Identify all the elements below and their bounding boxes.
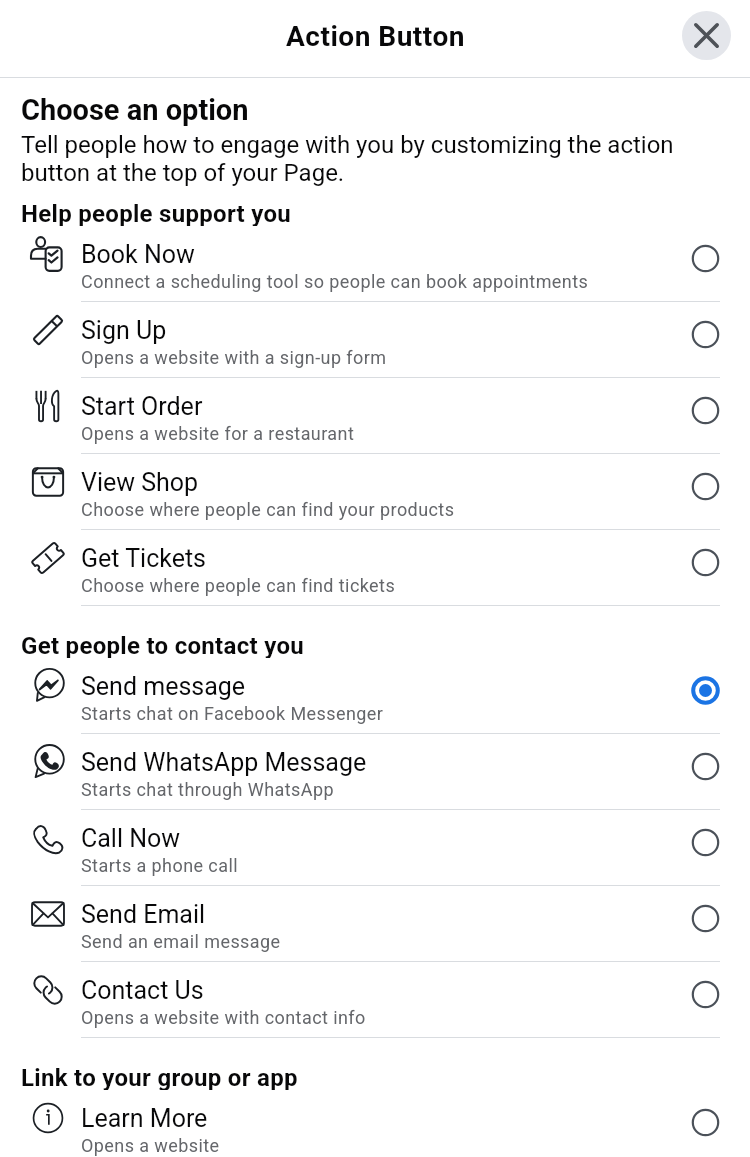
staticText: Tell people how to engage with you by cu… xyxy=(21,131,705,187)
staticText: Book Now xyxy=(81,240,195,269)
staticText: Starts chat through WhatsApp xyxy=(81,779,335,800)
staticText: Learn More xyxy=(81,1104,208,1133)
button[interactable]: Send message xyxy=(0,658,750,734)
button[interactable]: Book Now xyxy=(0,226,750,302)
staticText: Send WhatsApp Message xyxy=(81,748,367,777)
staticText: Opens a website for a restaurant xyxy=(81,423,355,444)
staticText: Get Tickets xyxy=(81,544,207,573)
staticText: Sign Up xyxy=(81,316,167,345)
staticText: Get people to contact you xyxy=(21,632,304,658)
staticText: Starts chat on Facebook Messenger xyxy=(81,703,384,724)
button[interactable]: Learn More xyxy=(0,1090,750,1157)
button[interactable]: Send Email xyxy=(0,886,750,962)
staticText: Send Email xyxy=(81,900,206,929)
staticText: Send message xyxy=(81,672,246,701)
button[interactable]: Close xyxy=(682,11,731,60)
staticText: Choose where people can find your produc… xyxy=(81,499,455,520)
staticText: Choose where people can find tickets xyxy=(81,575,396,596)
staticText: Opens a website with contact info xyxy=(81,1007,366,1028)
staticText: Action Button xyxy=(286,20,465,53)
staticText: Start Order xyxy=(81,392,203,421)
staticText: View Shop xyxy=(81,468,199,497)
staticText: Starts a phone call xyxy=(81,855,238,876)
staticText: Call Now xyxy=(81,824,181,853)
button[interactable]: Contact Us xyxy=(0,962,750,1038)
staticText: Link to your group or app xyxy=(21,1064,298,1090)
button[interactable]: Start Order xyxy=(0,378,750,454)
button[interactable]: Call Now xyxy=(0,810,750,886)
staticText: Send an email message xyxy=(81,931,281,952)
button[interactable]: View Shop xyxy=(0,454,750,530)
staticText: Contact Us xyxy=(81,976,204,1005)
staticText: Opens a website with a sign-up form xyxy=(81,347,387,368)
button[interactable]: Sign Up xyxy=(0,302,750,378)
staticText: Opens a website xyxy=(81,1135,220,1156)
button[interactable]: Get Tickets xyxy=(0,530,750,606)
button[interactable]: Send WhatsApp Message xyxy=(0,734,750,810)
staticText: Help people support you xyxy=(21,200,292,226)
staticText: Choose an option xyxy=(21,93,249,127)
staticText: Connect a scheduling tool so people can … xyxy=(81,271,589,292)
